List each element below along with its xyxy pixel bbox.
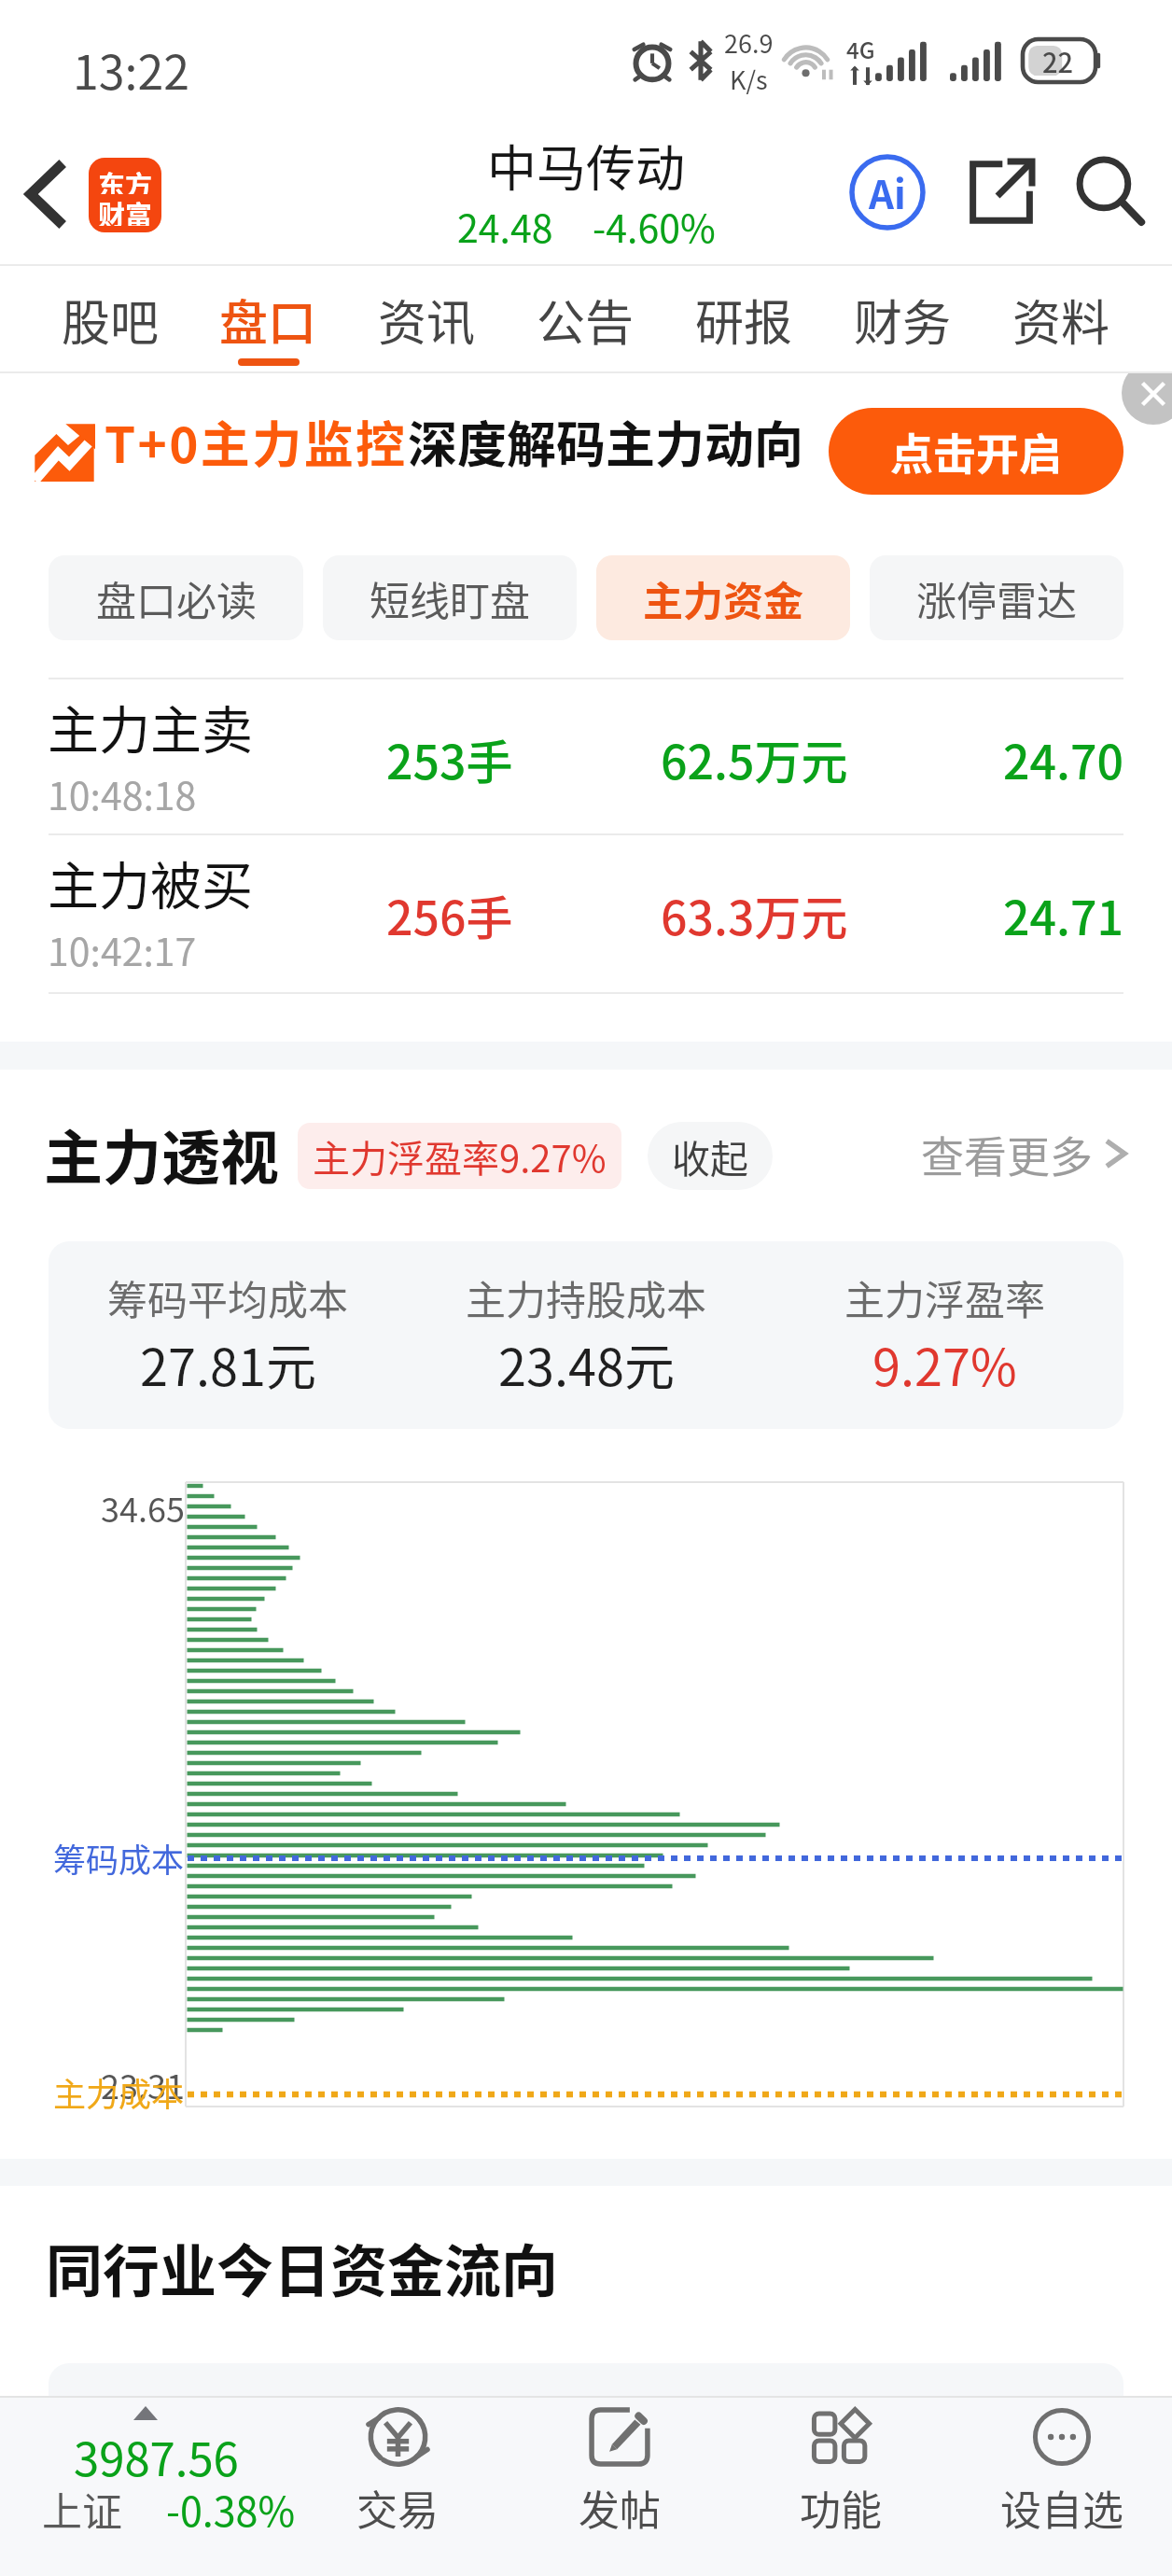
button[interactable]: 发帖 [509, 2396, 730, 2576]
staticText: -4.60% [593, 198, 716, 253]
button[interactable]: Close banner [1026, 373, 1172, 426]
button[interactable]: 股吧 [32, 266, 189, 371]
staticText: 上证 [42, 2480, 122, 2538]
staticText: 63.3万元 [661, 881, 848, 948]
staticText: -0.38% [166, 2480, 296, 2538]
staticText: 主力浮盈率9.27% [313, 1129, 607, 1183]
button[interactable]: 资料 [982, 266, 1140, 371]
staticText: 资讯 [378, 285, 476, 355]
button[interactable]: 功能 [730, 2396, 951, 2576]
staticText: 筹码成本 [53, 1834, 185, 1882]
button[interactable]: 短线盯盘 [323, 555, 577, 640]
staticText: 62.5万元 [661, 725, 848, 792]
staticText: 24.70 [1003, 725, 1123, 792]
button[interactable]: 查看更多 [921, 1116, 1128, 1191]
button[interactable]: 收起 [648, 1122, 773, 1190]
button[interactable]: 交易 [286, 2396, 509, 2576]
button[interactable]: 主力资金 [596, 555, 850, 640]
staticText: 财富 [98, 194, 153, 226]
staticText: 筹码平均成本 [107, 1268, 348, 1326]
staticText: 主力成本 [53, 2068, 185, 2116]
staticText: 发帖 [579, 2478, 661, 2538]
staticText: 主力透视 [44, 1111, 279, 1185]
staticText: 253手 [386, 725, 513, 792]
staticText: 3987.56 [74, 2423, 239, 2489]
button[interactable]: Search [1063, 146, 1156, 239]
button[interactable]: 研报 [664, 266, 823, 371]
staticText: K/s [730, 61, 768, 97]
button[interactable]: East Money [89, 158, 161, 232]
staticText: 23.48元 [498, 1327, 675, 1400]
staticText: 交易 [356, 2478, 439, 2538]
staticText: 点击开启 [890, 420, 1062, 483]
button[interactable]: 涨停雷达 [870, 555, 1123, 640]
staticText: 盘口必读 [96, 569, 257, 627]
staticText: 功能 [800, 2478, 882, 2538]
staticText: 资料 [1012, 285, 1110, 355]
staticText: 4G [846, 33, 875, 65]
staticText: 涨停雷达 [916, 569, 1077, 627]
staticText: 主力浮盈率 [844, 1268, 1045, 1326]
staticText: 盘口 [219, 285, 317, 355]
button[interactable]: 设自选 [951, 2396, 1172, 2576]
staticText: 同行业今日资金流向 [46, 2226, 559, 2308]
staticText: 10:48:18 [48, 765, 197, 820]
staticText: 中马传动 [487, 130, 685, 202]
staticText: 256手 [386, 881, 513, 948]
staticText: 短线盯盘 [370, 569, 530, 627]
staticText: 24.48 [457, 198, 553, 253]
staticText: 23.31 [101, 2060, 185, 2108]
button[interactable]: 点击开启 [829, 408, 1123, 495]
staticText: 24.71 [1003, 881, 1123, 948]
button[interactable]: 主力被买 [0, 834, 1172, 990]
staticText: T+0主力监控 [105, 406, 408, 478]
staticText: 查看更多 [921, 1123, 1093, 1185]
staticText: 26.9 [724, 24, 774, 61]
staticText: 深度解码主力动向 [408, 406, 803, 478]
staticText: 财务 [854, 285, 952, 355]
button[interactable]: Back [11, 153, 78, 235]
staticText: Ai [869, 163, 906, 220]
staticText: 股吧 [62, 285, 160, 355]
staticText: 东方 [98, 164, 153, 194]
button[interactable]: 盘口 [189, 266, 347, 371]
button[interactable]: 公告 [506, 266, 664, 371]
staticText: 主力主卖 [48, 689, 254, 763]
staticText: 公告 [537, 285, 635, 355]
staticText: 13:22 [73, 35, 189, 103]
button[interactable]: 财务 [823, 266, 982, 371]
staticText: 设自选 [1000, 2478, 1123, 2538]
staticText: 10:42:17 [48, 921, 197, 976]
staticText: 主力资金 [643, 569, 803, 627]
button[interactable]: 主力浮盈率9.27% [298, 1123, 621, 1189]
staticText: 主力被买 [48, 845, 254, 919]
staticText: 主力持股成本 [466, 1268, 706, 1326]
staticText: 34.65 [101, 1483, 185, 1532]
staticText: 收起 [672, 1128, 748, 1183]
button[interactable]: 主力主卖 [0, 679, 1172, 834]
staticText: 9.27% [872, 1327, 1017, 1400]
button[interactable]: 盘口必读 [49, 555, 303, 640]
button[interactable]: Share [955, 146, 1048, 239]
button[interactable]: 3987.56 [0, 2396, 308, 2576]
button[interactable]: AI assistant [841, 146, 934, 239]
button[interactable]: 资讯 [347, 266, 506, 371]
staticText: 22 [1042, 41, 1074, 80]
staticText: 27.81元 [140, 1327, 316, 1400]
staticText: 研报 [695, 285, 793, 355]
